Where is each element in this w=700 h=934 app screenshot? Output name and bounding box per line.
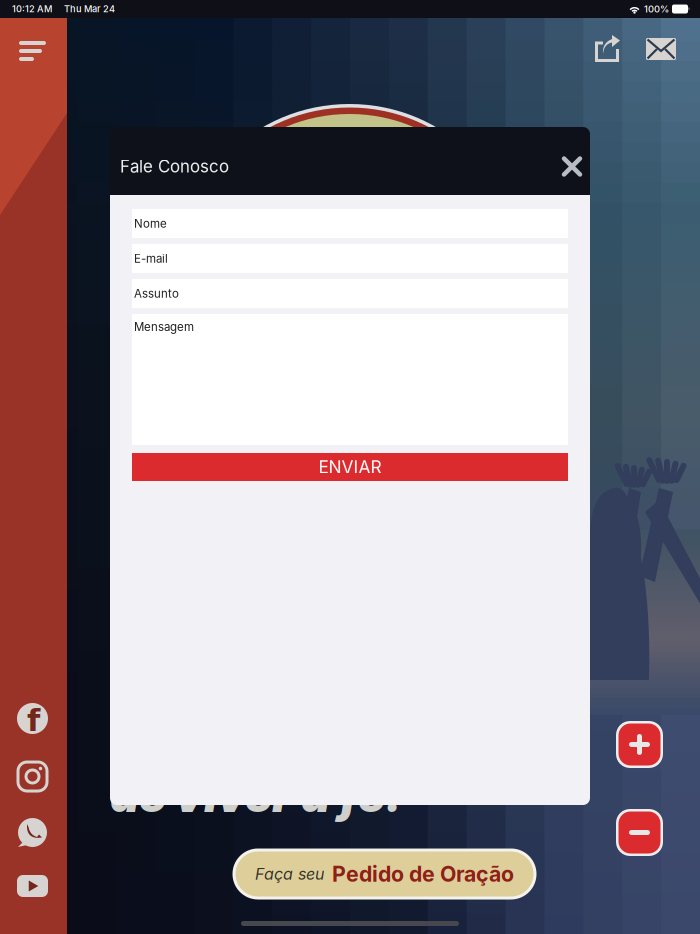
staticText: 100%: [644, 3, 669, 15]
staticText: Pedido de Oração: [332, 861, 514, 887]
staticText: E-mail: [134, 252, 168, 265]
staticText: Mensagem: [134, 320, 194, 334]
staticText: 10:12 AM: [12, 3, 52, 14]
staticText: Nome: [134, 217, 167, 230]
button[interactable]: Facebook: [17, 703, 48, 734]
button[interactable]: Mail: [646, 38, 676, 60]
button[interactable]: Zoom out: [616, 809, 663, 856]
button[interactable]: ENVIAR: [132, 453, 568, 481]
staticText: Thu Mar 24: [64, 3, 115, 14]
staticText: Fale Conosco: [120, 156, 229, 177]
staticText: Assunto: [134, 287, 179, 300]
button[interactable]: Share: [594, 35, 622, 63]
button[interactable]: YouTube: [17, 875, 48, 897]
button[interactable]: Instagram: [17, 761, 48, 792]
button[interactable]: Close: [551, 147, 589, 185]
staticText: Faça seu: [255, 864, 324, 884]
staticText: f: [27, 703, 40, 738]
button[interactable]: WhatsApp: [17, 818, 48, 849]
button[interactable]: Faça seu: [234, 850, 535, 898]
staticText: ENVIAR: [318, 456, 381, 477]
staticText: de viver a fé!: [110, 768, 402, 823]
button[interactable]: Menu: [19, 37, 65, 65]
button[interactable]: Zoom in: [616, 721, 663, 768]
